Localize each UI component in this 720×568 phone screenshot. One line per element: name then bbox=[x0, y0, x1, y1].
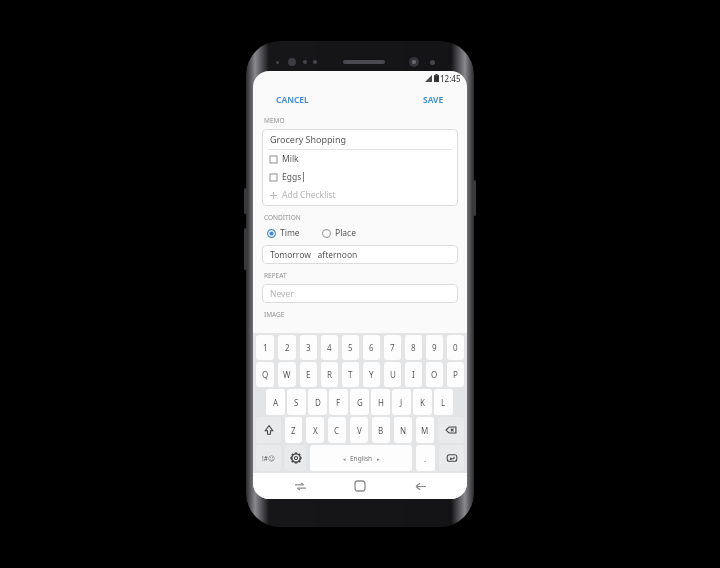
button[interactable]: U bbox=[384, 362, 401, 387]
button[interactable]: Y bbox=[363, 362, 380, 387]
staticText: G bbox=[357, 397, 363, 408]
button[interactable]: SAVE bbox=[418, 91, 449, 109]
button[interactable]: I bbox=[405, 362, 422, 387]
button[interactable]: Keyboard settings bbox=[285, 445, 306, 471]
staticText: MEMO bbox=[264, 116, 285, 125]
staticText: U bbox=[390, 369, 396, 380]
staticText: O bbox=[431, 369, 438, 380]
button[interactable]: 8 bbox=[405, 335, 422, 360]
staticText: K bbox=[420, 397, 425, 408]
staticText: S bbox=[294, 397, 299, 408]
button[interactable]: !#☺ bbox=[256, 445, 281, 471]
button[interactable]: Shift bbox=[256, 417, 281, 443]
staticText: P bbox=[453, 369, 458, 380]
staticText: V bbox=[357, 425, 362, 436]
staticText: 7 bbox=[390, 342, 395, 353]
button[interactable]: X bbox=[306, 417, 324, 443]
button[interactable]: 1 bbox=[256, 335, 274, 360]
button[interactable]: H bbox=[371, 389, 390, 415]
button[interactable]: 7 bbox=[384, 335, 401, 360]
button[interactable]: Enter bbox=[439, 445, 464, 471]
staticText: E bbox=[306, 369, 311, 380]
button[interactable]: Add Checklist bbox=[270, 186, 458, 204]
staticText: 5 bbox=[348, 342, 353, 353]
staticText: A bbox=[273, 397, 279, 408]
button[interactable]: O bbox=[426, 362, 443, 387]
button[interactable]: Tomorrow afternoon bbox=[262, 245, 458, 264]
button[interactable]: B bbox=[372, 417, 390, 443]
button[interactable]: C bbox=[328, 417, 346, 443]
staticText: 4 bbox=[327, 342, 332, 353]
staticText: Never bbox=[270, 288, 294, 300]
staticText: 6 bbox=[369, 342, 374, 353]
staticText: Eggs bbox=[282, 171, 302, 183]
staticText: X bbox=[313, 425, 318, 436]
button[interactable]: D bbox=[308, 389, 327, 415]
staticText: 12:45 bbox=[440, 73, 461, 84]
staticText: H bbox=[378, 397, 384, 408]
staticText: Add Checklist bbox=[282, 189, 336, 201]
button[interactable]: Home bbox=[347, 473, 373, 499]
button[interactable]: Never bbox=[262, 284, 458, 303]
staticText: CONDITION bbox=[264, 213, 301, 222]
button[interactable]: P bbox=[447, 362, 464, 387]
button[interactable]: J bbox=[392, 389, 411, 415]
button[interactable]: 2 bbox=[278, 335, 296, 360]
button[interactable]: Grocery Shopping bbox=[262, 129, 458, 206]
button[interactable]: T bbox=[342, 362, 359, 387]
staticText: Grocery Shopping bbox=[270, 133, 347, 145]
button[interactable]: 5 bbox=[342, 335, 359, 360]
staticText: I bbox=[412, 369, 415, 380]
button[interactable]: G bbox=[350, 389, 369, 415]
button[interactable]: 3 bbox=[300, 335, 317, 360]
button[interactable]: Backspace bbox=[438, 417, 464, 443]
staticText: SAVE bbox=[423, 94, 444, 106]
button[interactable]: Time bbox=[264, 225, 303, 241]
staticText: !#☺ bbox=[262, 454, 275, 463]
staticText: C bbox=[334, 425, 340, 436]
staticText: W bbox=[283, 369, 291, 380]
staticText: 2 bbox=[285, 342, 290, 353]
staticText: Y bbox=[369, 369, 374, 380]
button[interactable]: 0 bbox=[447, 335, 464, 360]
button[interactable]: Checkbox Milk bbox=[270, 150, 458, 168]
staticText: 8 bbox=[411, 342, 416, 353]
staticText: . bbox=[424, 453, 427, 464]
button[interactable]: Recents bbox=[287, 473, 313, 499]
button[interactable]: V bbox=[350, 417, 368, 443]
staticText: 0 bbox=[453, 342, 458, 353]
staticText: Q bbox=[262, 369, 269, 380]
other: Checkbox Eggs bbox=[270, 174, 277, 181]
staticText: J bbox=[400, 397, 403, 408]
staticText: English bbox=[350, 454, 373, 463]
button[interactable]: . bbox=[416, 445, 435, 471]
button[interactable]: ◂ bbox=[310, 445, 412, 471]
button[interactable]: L bbox=[434, 389, 453, 415]
button[interactable]: S bbox=[287, 389, 306, 415]
staticText: IMAGE bbox=[264, 310, 285, 319]
button[interactable]: Z bbox=[285, 417, 302, 443]
button[interactable]: A bbox=[266, 389, 285, 415]
button[interactable]: 4 bbox=[321, 335, 338, 360]
button[interactable]: W bbox=[278, 362, 296, 387]
button[interactable]: K bbox=[413, 389, 432, 415]
button[interactable]: F bbox=[329, 389, 348, 415]
button[interactable]: 6 bbox=[363, 335, 380, 360]
button[interactable]: CANCEL bbox=[271, 91, 314, 109]
button[interactable]: E bbox=[300, 362, 317, 387]
button[interactable]: R bbox=[321, 362, 338, 387]
button[interactable]: M bbox=[416, 417, 434, 443]
button[interactable]: Place bbox=[319, 225, 359, 241]
staticText: M bbox=[421, 425, 429, 436]
button[interactable]: 9 bbox=[426, 335, 443, 360]
staticText: ◂ bbox=[343, 456, 346, 462]
button[interactable]: Q bbox=[256, 362, 274, 387]
button[interactable]: N bbox=[394, 417, 412, 443]
staticText: ▸ bbox=[377, 456, 380, 462]
staticText: D bbox=[315, 397, 321, 408]
other: Checkbox Milk bbox=[270, 156, 277, 163]
staticText: T bbox=[348, 369, 353, 380]
staticText: REPEAT bbox=[264, 271, 287, 280]
button[interactable]: Back bbox=[407, 473, 433, 499]
button[interactable]: Checkbox Eggs bbox=[270, 168, 458, 186]
